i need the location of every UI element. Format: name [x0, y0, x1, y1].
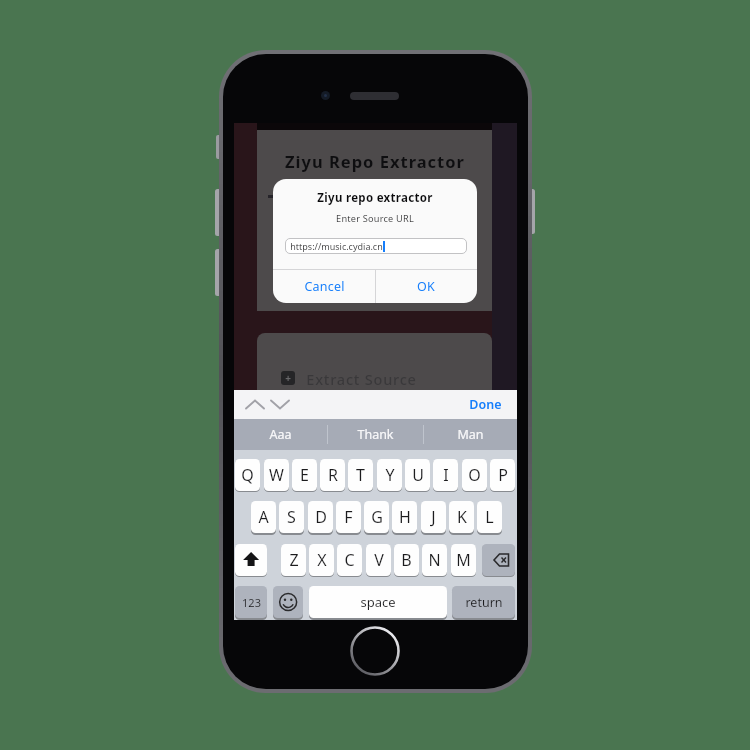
staticText: Cancel [304, 278, 345, 295]
staticText: K [457, 506, 467, 528]
button[interactable]: space [309, 586, 447, 618]
staticText: W [269, 464, 284, 486]
staticText: J [431, 506, 436, 528]
staticText: Done [469, 396, 502, 413]
staticText: G [371, 506, 383, 528]
button[interactable]: R [320, 459, 345, 491]
staticText: Enter Source URL [336, 212, 414, 225]
staticText: R [328, 464, 338, 486]
staticText: C [344, 549, 355, 571]
button[interactable]: Q [235, 459, 260, 491]
button[interactable]: OK [375, 269, 477, 303]
button[interactable]: A [251, 501, 276, 533]
button[interactable]: W [264, 459, 289, 491]
staticText: U [412, 464, 424, 486]
button[interactable]: L [477, 501, 502, 533]
button[interactable] [482, 544, 515, 576]
staticText: T [356, 464, 365, 486]
button[interactable]: N [422, 544, 447, 576]
staticText: Man [457, 426, 484, 443]
button[interactable]: 123 [235, 586, 267, 618]
staticText: A [258, 506, 269, 528]
staticText: P [498, 464, 508, 486]
staticText: E [300, 464, 309, 486]
staticText: 123 [242, 595, 261, 610]
staticText: Ziyu repo extractor [317, 190, 433, 206]
button[interactable]: Cancel [273, 269, 375, 303]
button[interactable]: T [348, 459, 373, 491]
staticText: Thank [357, 426, 394, 443]
button[interactable]: V [366, 544, 391, 576]
staticText: X [317, 549, 327, 571]
button[interactable]: I [433, 459, 458, 491]
button[interactable]: H [392, 501, 417, 533]
staticText: S [287, 506, 296, 528]
button[interactable]: return [452, 586, 515, 618]
staticText: V [374, 549, 384, 571]
staticText: I [443, 464, 449, 486]
button[interactable]: D [308, 501, 333, 533]
staticText: https://music.cydia.cn [290, 240, 383, 252]
staticText: Q [241, 464, 254, 486]
staticText: H [399, 506, 411, 528]
button[interactable]: P [490, 459, 515, 491]
button[interactable]: O [462, 459, 487, 491]
button[interactable]: G [364, 501, 389, 533]
staticText: Aaa [269, 426, 292, 443]
button[interactable]: E [292, 459, 317, 491]
button[interactable]: K [449, 501, 474, 533]
staticText: Ziyu Repo Extractor [285, 150, 465, 172]
staticText: + [285, 371, 291, 385]
button[interactable] [235, 544, 267, 576]
staticText: L [485, 506, 494, 528]
button[interactable]: C [337, 544, 362, 576]
staticText: Extract Source [306, 369, 417, 387]
button[interactable]: X [309, 544, 334, 576]
staticText: OK [417, 278, 435, 295]
button[interactable]: S [279, 501, 304, 533]
staticText: B [401, 549, 412, 571]
button[interactable]: J [421, 501, 446, 533]
staticText: F [344, 506, 353, 528]
button[interactable]: Aaa [234, 419, 327, 450]
button[interactable]: Y [377, 459, 402, 491]
staticText: return [465, 594, 503, 611]
staticText: M [456, 549, 471, 571]
button[interactable]: M [451, 544, 476, 576]
button[interactable]: Thank [328, 419, 423, 450]
button[interactable]: Done [469, 396, 502, 413]
button[interactable]: Z [281, 544, 306, 576]
staticText: Y [385, 464, 395, 486]
button[interactable]: F [336, 501, 361, 533]
staticText: N [428, 549, 441, 571]
button[interactable]: Man [424, 419, 517, 450]
staticText: D [315, 506, 327, 528]
staticText: space [360, 593, 396, 611]
staticText: Z [289, 549, 299, 571]
button[interactable] [273, 586, 303, 618]
button[interactable]: U [405, 459, 430, 491]
button[interactable]: B [394, 544, 419, 576]
staticText: O [468, 464, 481, 486]
